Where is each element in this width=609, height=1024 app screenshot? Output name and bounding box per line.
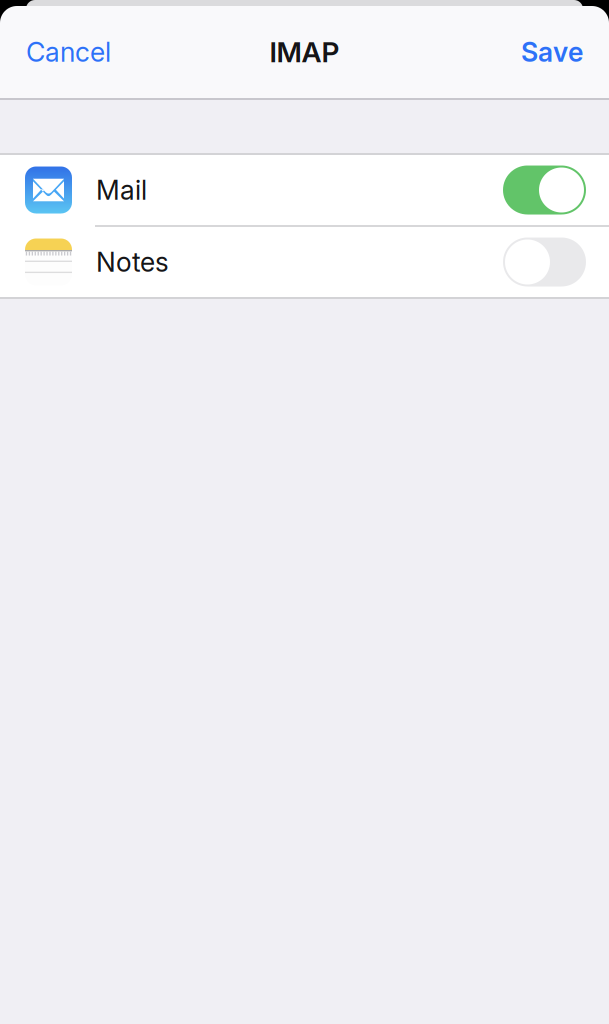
staticText: Save — [521, 36, 583, 68]
button[interactable]: Cancel — [16, 26, 121, 78]
staticText: Mail — [96, 174, 147, 206]
staticText: Notes — [96, 246, 169, 278]
button[interactable]: Mail — [0, 155, 609, 225]
staticText: Cancel — [26, 36, 111, 68]
button[interactable]: Notes — [0, 227, 609, 297]
button[interactable]: Save — [511, 26, 593, 78]
staticText: IMAP — [269, 35, 339, 69]
